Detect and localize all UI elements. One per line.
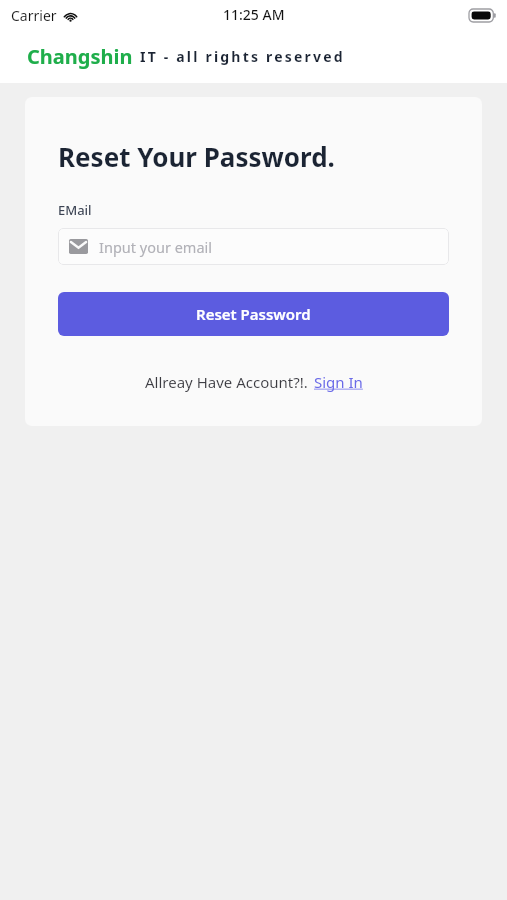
button[interactable]: Sign In — [314, 372, 363, 392]
staticText: EMail — [58, 201, 92, 219]
other: Email — [69, 239, 88, 254]
staticText: Sign In — [314, 372, 363, 392]
staticText: IT - all rights reserved — [140, 47, 345, 66]
staticText: Input your email — [99, 237, 212, 257]
staticText: Reset Your Password. — [58, 139, 335, 174]
staticText: Changshin — [27, 43, 133, 70]
staticText: 11:25 AM — [223, 5, 285, 24]
button[interactable]: Reset Password — [58, 292, 449, 336]
staticText: Carrier — [11, 6, 57, 25]
staticText: Reset Password — [196, 304, 311, 324]
button[interactable]: Email — [58, 228, 449, 265]
staticText: Allreay Have Account?!. — [145, 372, 308, 392]
